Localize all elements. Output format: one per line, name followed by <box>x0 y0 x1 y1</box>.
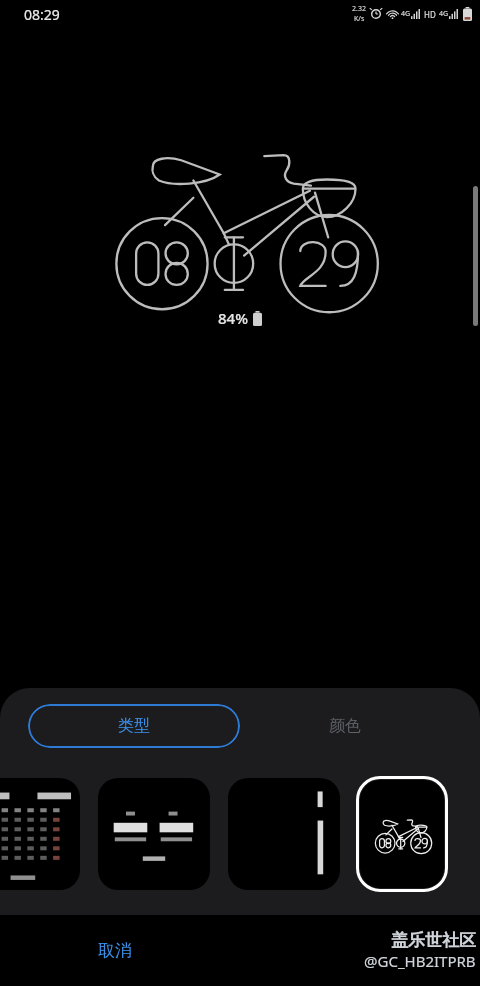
staticText: 取消 <box>98 940 132 961</box>
staticText: 颜色 <box>329 716 361 736</box>
staticText: K/s <box>354 14 365 24</box>
staticText: 盖乐世社区 <box>391 930 476 951</box>
button[interactable]: Watch face style 1 <box>98 778 210 890</box>
button[interactable]: 类型 <box>28 704 240 748</box>
staticText: @GC_HB2ITPRB <box>364 951 476 971</box>
button[interactable]: Watch face style 2 <box>228 778 340 890</box>
staticText: 84% <box>218 308 248 328</box>
staticText: 4G <box>401 9 411 19</box>
staticText: 2.32 <box>352 4 366 14</box>
staticText: 类型 <box>118 716 150 736</box>
staticText: 08:29 <box>24 5 60 24</box>
button[interactable]: 取消 <box>98 940 132 961</box>
staticText: HD <box>424 9 436 20</box>
button[interactable]: Watch face style 3 <box>360 780 444 888</box>
staticText: 4G <box>439 9 449 19</box>
button[interactable]: Watch face style 0 <box>0 778 80 890</box>
button[interactable]: 颜色 <box>270 704 420 748</box>
